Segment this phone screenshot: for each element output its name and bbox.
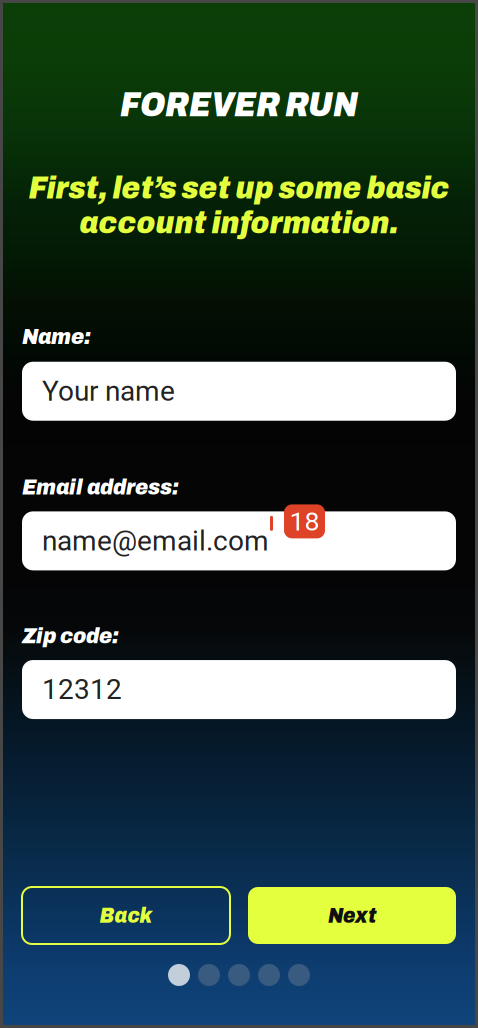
staticText: name@email.com: [42, 524, 269, 557]
staticText: Back: [99, 904, 152, 927]
staticText: account information.: [79, 205, 398, 240]
staticText: Name:: [22, 324, 91, 349]
button[interactable]: Next: [248, 887, 456, 944]
staticText: Zip code:: [22, 623, 119, 648]
staticText: FOREVER RUN: [120, 86, 358, 123]
staticText: Next: [328, 904, 376, 927]
staticText: First, let’s set up some basic: [28, 170, 449, 205]
staticText: 18: [289, 506, 319, 537]
staticText: Your name: [42, 375, 175, 408]
staticText: Email address:: [22, 475, 179, 499]
button[interactable]: Back: [22, 887, 230, 944]
staticText: 12312: [42, 673, 122, 706]
